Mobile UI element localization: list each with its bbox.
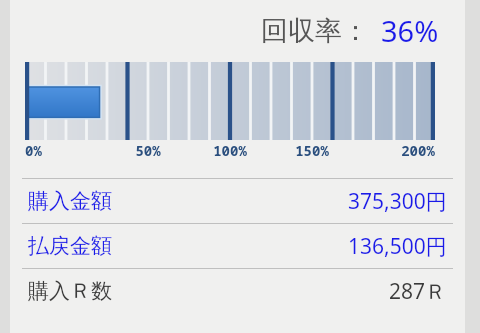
staticText: 払戻金額 xyxy=(28,233,112,259)
button[interactable]: 購入金額 xyxy=(10,179,465,223)
staticText: 136,500円 xyxy=(348,232,447,261)
staticText: 375,300円 xyxy=(348,187,447,216)
button[interactable]: 払戻金額 xyxy=(10,224,465,268)
staticText: 購入Ｒ数 xyxy=(28,278,112,304)
staticText: 0% xyxy=(25,141,42,160)
staticText: 150% xyxy=(295,141,329,160)
button[interactable]: 回収率： xyxy=(10,0,465,60)
button[interactable]: Recovery rate bar chart, 36 percent xyxy=(10,60,465,160)
staticText: 購入金額 xyxy=(28,188,112,214)
staticText: 回収率： xyxy=(261,14,369,48)
staticText: 287Ｒ xyxy=(389,277,447,306)
staticText: 50% xyxy=(135,141,161,160)
staticText: 200% xyxy=(401,141,435,160)
button[interactable]: 購入Ｒ数 xyxy=(10,269,465,313)
staticText: 100% xyxy=(213,141,247,160)
staticText: 36% xyxy=(381,11,439,50)
